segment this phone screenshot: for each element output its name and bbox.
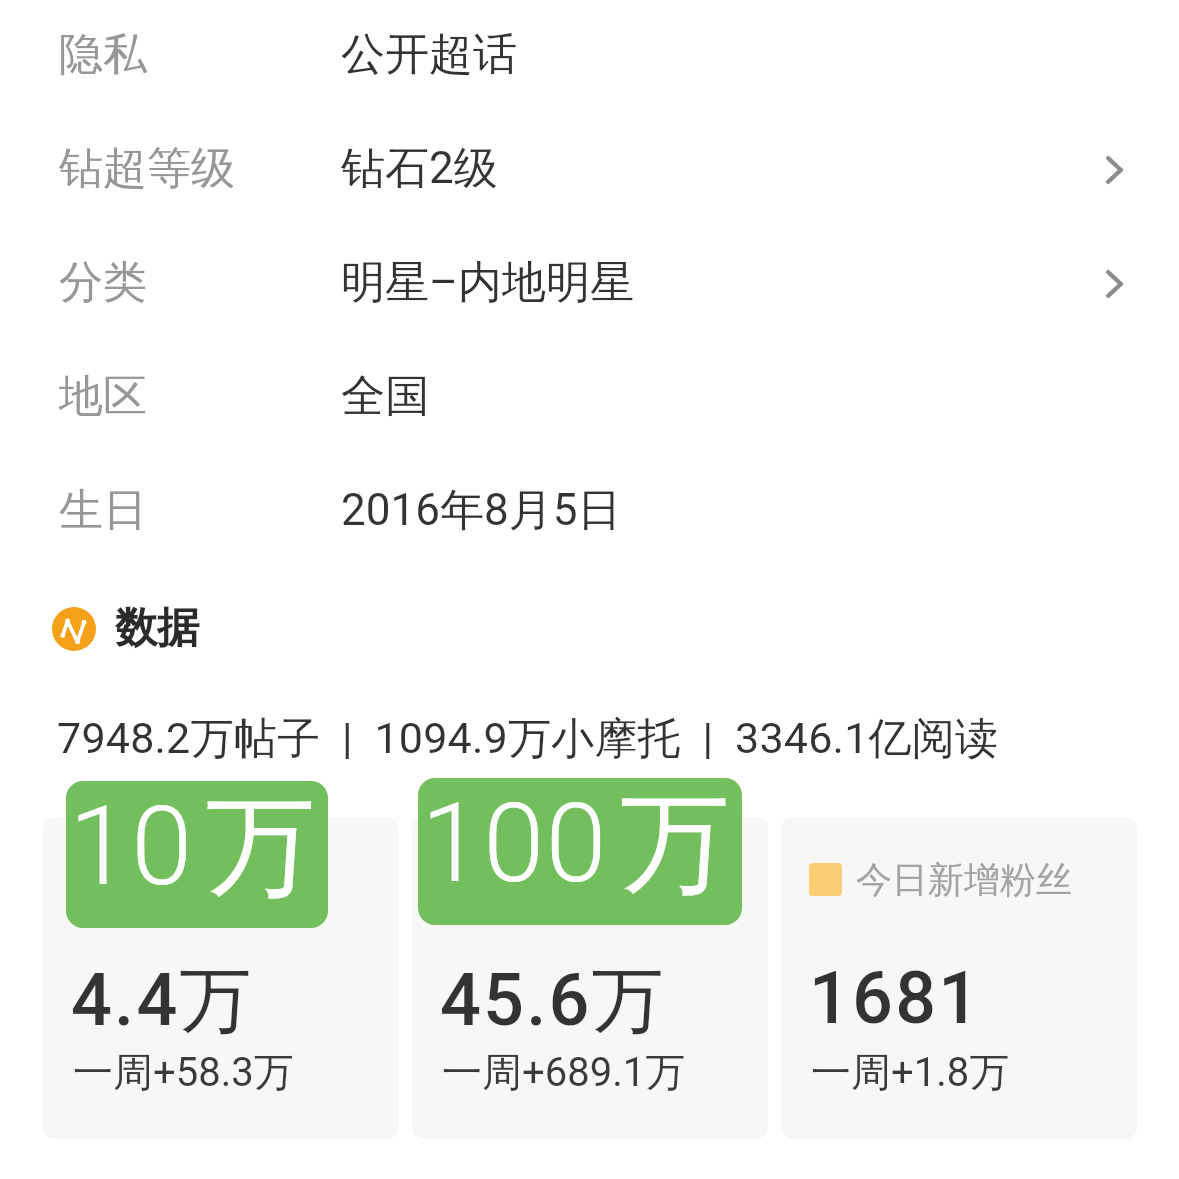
staticText: 全国 bbox=[341, 369, 429, 424]
staticText: 45.6万 bbox=[440, 956, 666, 1047]
button[interactable]: 生日 bbox=[0, 453, 1179, 567]
staticText: 10 万 bbox=[69, 781, 318, 917]
staticText: 分类 bbox=[59, 255, 147, 310]
other: More bbox=[1106, 270, 1123, 298]
button[interactable]: 100 万 bbox=[418, 778, 742, 925]
staticText: 隐私 bbox=[59, 27, 147, 82]
staticText: 钻石2级 bbox=[341, 141, 498, 196]
staticText: 1681 bbox=[809, 956, 982, 1040]
button[interactable]: 今日新增粉丝 bbox=[781, 817, 1137, 1139]
other: More bbox=[1106, 156, 1123, 184]
staticText: 钻超等级 bbox=[59, 141, 235, 196]
staticText: 地区 bbox=[59, 369, 147, 424]
button[interactable]: 隐私 bbox=[0, 0, 1179, 111]
button[interactable]: 4.4万 bbox=[43, 817, 399, 1139]
staticText: 一周+58.3万 bbox=[73, 1047, 294, 1097]
button[interactable]: 分类 bbox=[0, 225, 1179, 339]
button[interactable]: 钻超等级 bbox=[0, 111, 1179, 225]
other: Data bbox=[52, 607, 96, 651]
staticText: 一周+1.8万 bbox=[811, 1047, 1010, 1097]
staticText: 7948.2万帖子 | 1094.9万小摩托 | 3346.1亿阅读 bbox=[57, 712, 999, 766]
staticText: 公开超话 bbox=[341, 27, 517, 82]
button[interactable]: 地区 bbox=[0, 339, 1179, 453]
staticText: 4.4万 bbox=[71, 956, 254, 1047]
staticText: 100 万 bbox=[421, 778, 732, 914]
staticText: 2016年8月5日 bbox=[341, 483, 622, 538]
staticText: 明星–内地明星 bbox=[341, 255, 634, 310]
button[interactable]: 10 万 bbox=[66, 781, 328, 928]
staticText: 一周+689.1万 bbox=[442, 1047, 686, 1097]
button[interactable]: 45.6万 bbox=[412, 817, 768, 1139]
staticText: 数据 bbox=[115, 602, 199, 655]
staticText: 今日新增粉丝 bbox=[856, 857, 1072, 902]
staticText: 生日 bbox=[59, 483, 147, 538]
